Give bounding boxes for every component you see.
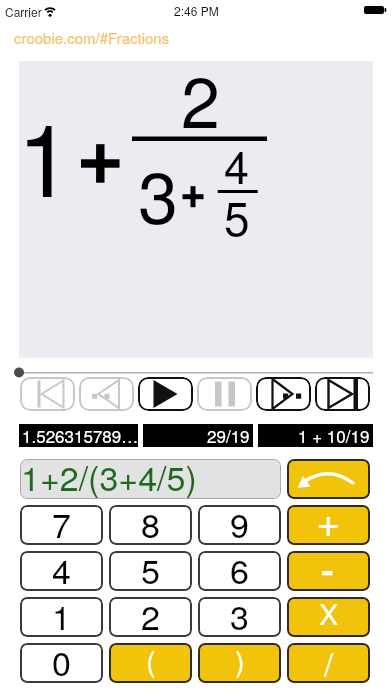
button[interactable]: 3 bbox=[198, 597, 281, 637]
button[interactable]: 6 bbox=[198, 551, 281, 591]
button[interactable]: 4 bbox=[20, 551, 103, 591]
staticText: 3 bbox=[230, 597, 249, 637]
staticText: ) bbox=[235, 643, 245, 681]
staticText: 3 bbox=[138, 141, 179, 244]
staticText: 29/19 bbox=[207, 423, 250, 447]
button[interactable]: 5 bbox=[109, 551, 192, 591]
button[interactable] bbox=[138, 377, 193, 411]
staticText: 1+2/(3+4/5) bbox=[21, 459, 197, 499]
staticText: 6 bbox=[230, 551, 249, 591]
staticText: 7 bbox=[52, 505, 71, 545]
button[interactable]: 2 bbox=[109, 597, 192, 637]
button[interactable]: 8 bbox=[109, 505, 192, 545]
button[interactable] bbox=[20, 377, 75, 411]
button[interactable]: / bbox=[287, 643, 370, 683]
button[interactable]: 1 bbox=[20, 597, 103, 637]
staticText: 9 bbox=[230, 505, 249, 545]
staticText: 0 bbox=[52, 643, 71, 683]
button[interactable] bbox=[287, 551, 370, 591]
staticText: 1.526315789… bbox=[22, 423, 139, 447]
staticText: 2 bbox=[141, 597, 160, 637]
staticText: 4 bbox=[224, 132, 250, 196]
staticText: + bbox=[316, 505, 341, 545]
staticText: / bbox=[324, 643, 334, 683]
staticText: 1 + 10/19 bbox=[298, 423, 370, 447]
button[interactable] bbox=[197, 377, 252, 411]
button[interactable]: + bbox=[287, 505, 370, 545]
button[interactable] bbox=[287, 459, 370, 499]
staticText: X bbox=[319, 597, 339, 634]
button[interactable] bbox=[79, 377, 134, 411]
staticText: ( bbox=[146, 643, 156, 681]
button[interactable]: 1+2/(3+4/5) bbox=[20, 459, 281, 499]
staticText: 1 bbox=[17, 82, 73, 225]
button[interactable]: 9 bbox=[198, 505, 281, 545]
staticText: 5 bbox=[141, 551, 160, 591]
button[interactable] bbox=[256, 377, 311, 411]
button[interactable]: croobie.com/#Fractions bbox=[14, 27, 170, 48]
button[interactable]: 7 bbox=[20, 505, 103, 545]
staticText: 8 bbox=[141, 505, 160, 545]
staticText: 5 bbox=[224, 183, 250, 249]
button[interactable]: ( bbox=[109, 643, 192, 683]
button[interactable] bbox=[315, 377, 370, 411]
staticText: 2 bbox=[181, 48, 220, 148]
button[interactable]: 0 bbox=[20, 643, 103, 683]
button[interactable]: X bbox=[287, 597, 370, 637]
button[interactable]: ) bbox=[198, 643, 281, 683]
staticText: 2:46 PM bbox=[174, 2, 219, 19]
staticText: 4 bbox=[52, 551, 71, 591]
staticText: Carrier bbox=[5, 3, 42, 20]
staticText: 1 bbox=[52, 597, 71, 637]
